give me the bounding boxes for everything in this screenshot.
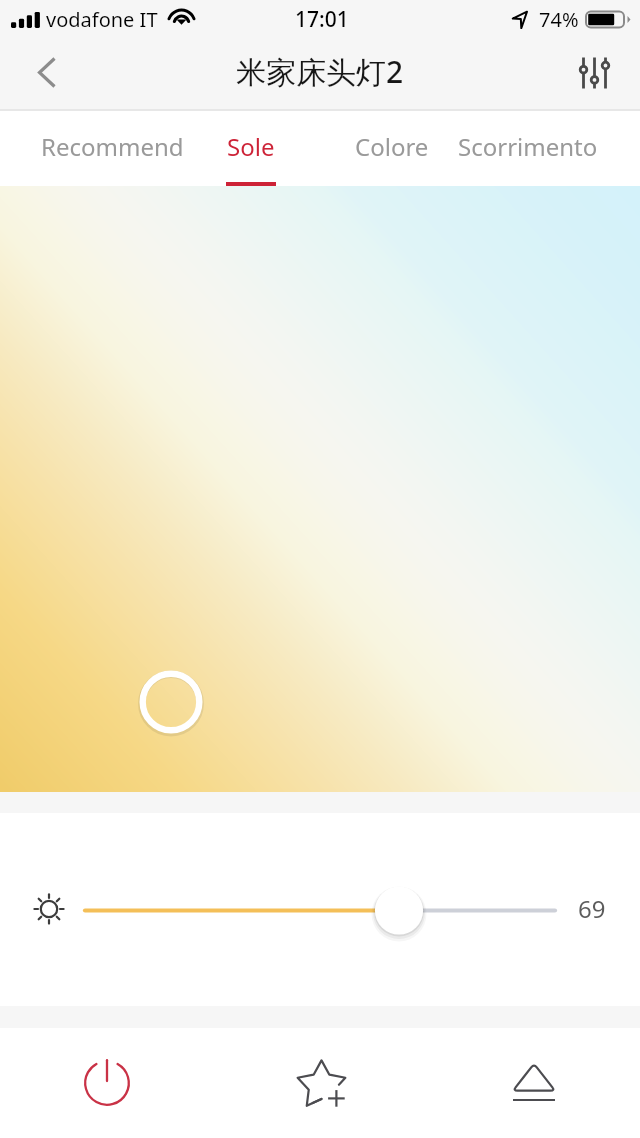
button[interactable]: Power (40, 1028, 173, 1138)
button[interactable]: Scorrimento (447, 111, 609, 186)
staticText: Sole (227, 130, 275, 163)
staticText: vodafone IT (46, 6, 158, 33)
staticText: Scorrimento (458, 130, 598, 163)
button[interactable]: Colour area (0, 186, 640, 792)
button[interactable]: Settings (560, 40, 640, 111)
button[interactable]: Back (0, 40, 80, 111)
button[interactable]: Add to favourites (253, 1028, 386, 1138)
staticText: 69 (578, 892, 606, 925)
staticText: 米家床头灯2 (236, 51, 404, 92)
button[interactable]: Sole (212, 111, 289, 186)
button[interactable]: Colore (343, 111, 440, 186)
staticText: 74% (539, 6, 579, 33)
staticText: Colore (355, 130, 429, 163)
button[interactable]: Recommend (30, 111, 194, 186)
button[interactable]: Brightness (70, 879, 570, 939)
staticText: 17:01 (295, 5, 349, 34)
button[interactable]: Eject (467, 1028, 600, 1138)
staticText: Recommend (41, 130, 184, 163)
